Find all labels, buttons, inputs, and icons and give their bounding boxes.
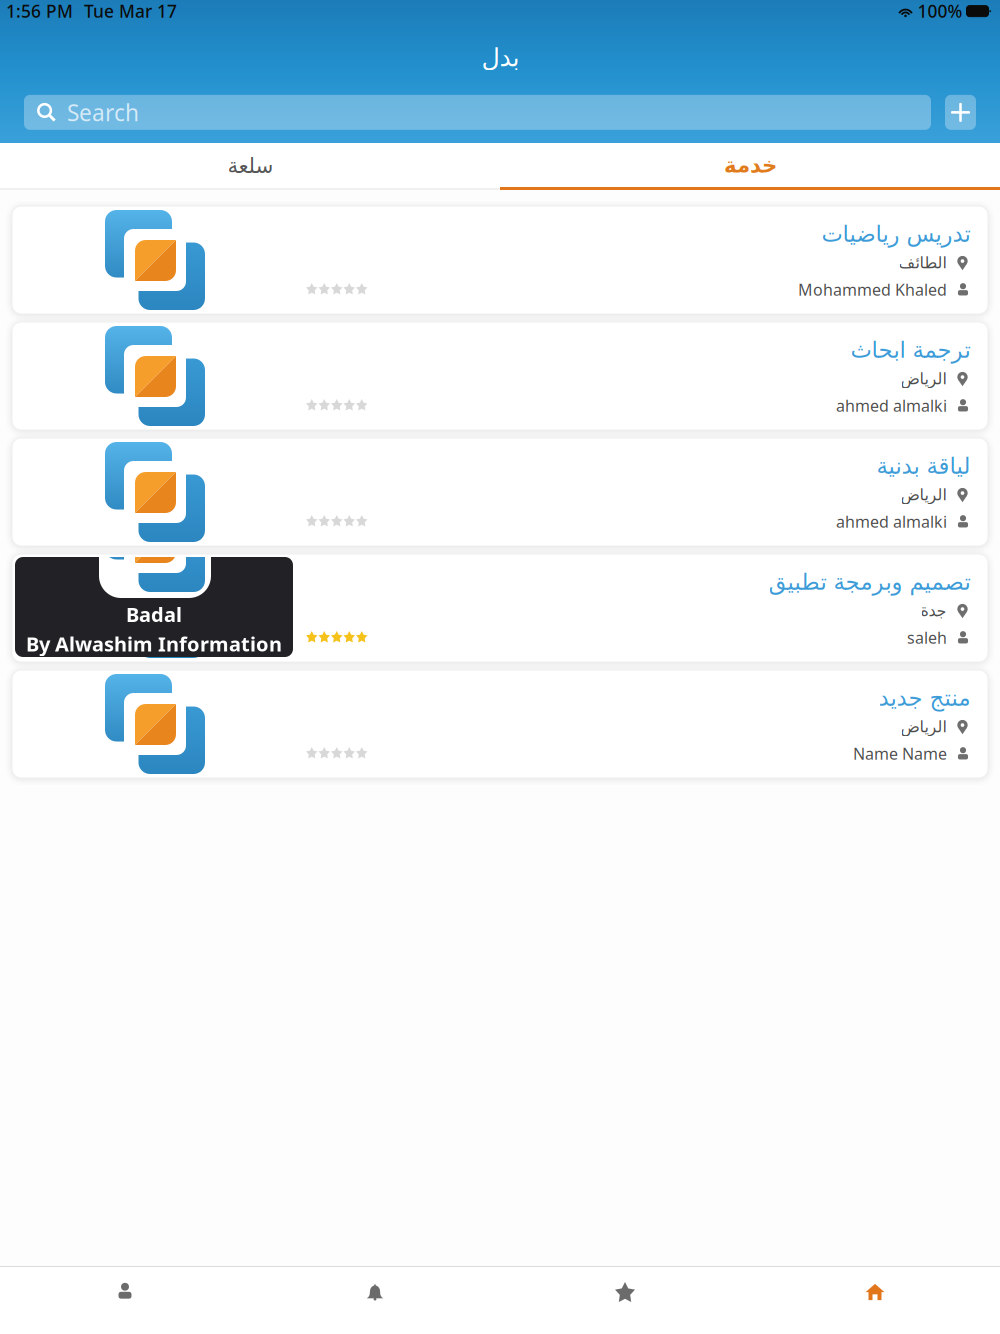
staticText: Badal <box>126 601 182 627</box>
staticText: Name Name <box>853 743 947 764</box>
button[interactable]: سلعة <box>0 143 500 190</box>
button[interactable]: منتج جديد <box>12 670 988 778</box>
button[interactable]: Favourites <box>500 1267 750 1334</box>
staticText: Tue Mar 17 <box>84 0 177 23</box>
staticText: saleh <box>907 627 947 648</box>
staticText: 100% <box>917 0 962 23</box>
staticText: الرياض <box>900 486 946 504</box>
staticText: خدمة <box>723 153 776 177</box>
staticText: لياقة بدنية <box>876 453 970 479</box>
staticText: الطائف <box>898 254 946 272</box>
button[interactable]: خدمة <box>500 143 1000 190</box>
staticText: جدة <box>920 602 946 620</box>
button[interactable]: ترجمة ابحاث <box>12 322 988 430</box>
staticText: الرياض <box>900 370 946 388</box>
staticText: ahmed almalki <box>836 395 947 416</box>
button[interactable]: Search <box>24 95 931 130</box>
staticText: الرياض <box>900 718 946 736</box>
button[interactable]: تصميم وبرمجة تطبيق <box>12 554 988 662</box>
staticText: ahmed almalki <box>836 511 947 532</box>
staticText: Search <box>67 97 139 127</box>
staticText: Mohammed Khaled <box>798 279 947 300</box>
button[interactable]: تدريس رياضيات <box>12 206 988 314</box>
staticText: منتج جديد <box>878 685 970 711</box>
staticText: سلعة <box>227 153 273 178</box>
button[interactable]: لياقة بدنية <box>12 438 988 546</box>
button[interactable]: Home <box>750 1267 1000 1334</box>
staticText: بدل <box>481 43 519 72</box>
staticText: تدريس رياضيات <box>821 221 970 247</box>
staticText: By Alwashim Information <box>26 630 282 657</box>
button[interactable]: Notifications <box>250 1267 500 1334</box>
button[interactable]: Add <box>945 95 976 130</box>
staticText: 1:56 PM <box>6 0 73 23</box>
button[interactable]: Profile <box>0 1267 250 1334</box>
staticText: ترجمة ابحاث <box>850 337 970 363</box>
staticText: تصميم وبرمجة تطبيق <box>768 569 970 595</box>
